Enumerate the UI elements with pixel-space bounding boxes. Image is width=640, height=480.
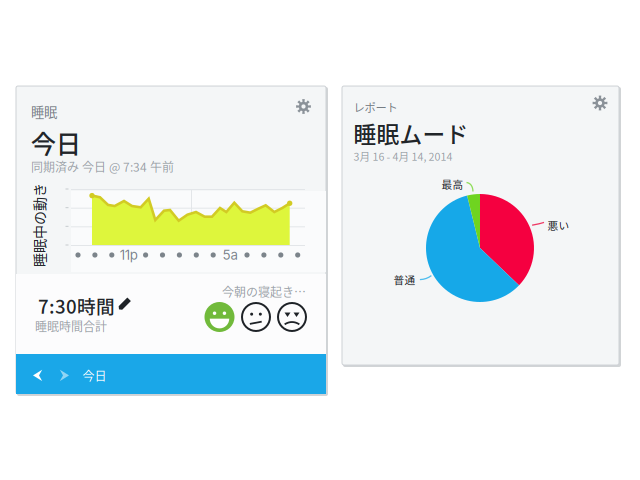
button[interactable]: よく眠れなかった — [277, 302, 307, 332]
staticText: 7:30時間 — [38, 292, 115, 319]
staticText: 睡眠中の動き — [0, 215, 81, 235]
staticText: 悪い — [547, 217, 569, 233]
staticText: 3月 16 - 4月 14, 2014 — [353, 148, 452, 164]
staticText: 同期済み 今日 @ 7:34 午前 — [31, 158, 174, 175]
staticText: 今日 — [31, 124, 81, 161]
button[interactable]: 普通 — [241, 302, 271, 332]
staticText: 今日 — [82, 367, 106, 384]
staticText: 睡眠 — [31, 102, 57, 121]
staticText: 睡眠時間合計 — [35, 317, 107, 335]
staticText: 5a — [223, 247, 238, 263]
staticText: レポート — [353, 99, 397, 115]
staticText: 普通 — [393, 272, 415, 287]
button[interactable]: 設定 — [288, 91, 318, 121]
staticText: 最高 — [441, 176, 463, 192]
button[interactable]: 次の日 — [51, 360, 77, 390]
staticText: 今朝の寝起き… — [222, 283, 306, 300]
button[interactable]: 今日 — [82, 360, 142, 390]
staticText: 睡眠ムード — [353, 117, 468, 149]
staticText: 11p — [120, 247, 138, 263]
button[interactable]: 前の日 — [25, 360, 51, 390]
button[interactable]: 設定 — [585, 88, 615, 118]
button[interactable]: よく眠れた — [204, 302, 234, 332]
